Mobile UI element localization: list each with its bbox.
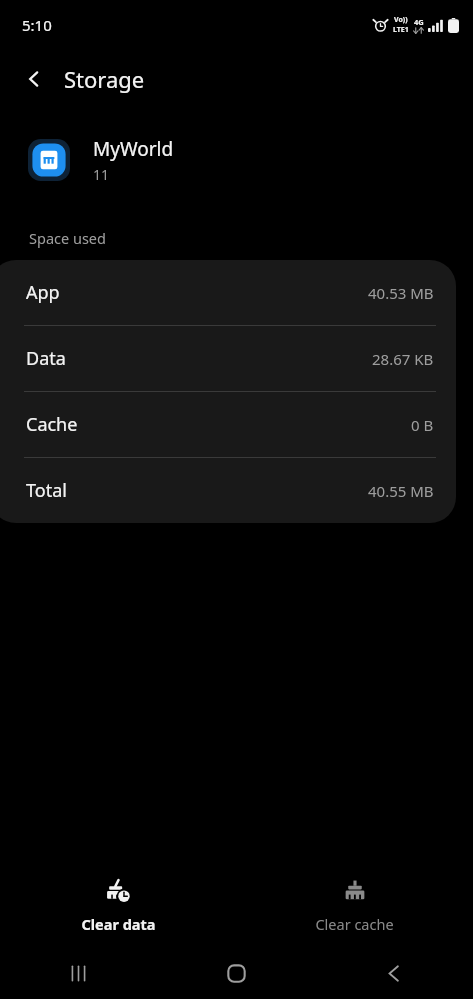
staticText: Space used [29,228,106,248]
button[interactable]: Total [0,458,456,523]
staticText: 11 [93,165,110,184]
staticText: LTE1 [393,25,409,35]
button[interactable]: Clear cache [236,865,473,934]
staticText: Data [26,346,66,371]
staticText: MyWorld [93,136,174,162]
staticText: Vo)) [394,15,408,25]
button[interactable]: App [0,260,456,325]
staticText: Cache [26,412,78,437]
staticText: Clear cache [315,914,394,934]
staticText: 28.67 KB [372,349,434,369]
staticText: 40.55 MB [368,481,434,501]
staticText: App [26,280,60,305]
staticText: 5:10 [22,15,52,35]
button[interactable]: Home [157,947,315,999]
staticText: Clear data [81,914,156,934]
staticText: 0 B [411,415,434,435]
button[interactable]: Back [315,947,473,999]
staticText: Storage [64,64,145,94]
button[interactable]: Cache [0,392,456,457]
button[interactable]: Data [0,326,456,391]
staticText: 4G [414,17,424,27]
button[interactable]: Back [12,57,56,101]
button[interactable]: Clear data [0,865,236,934]
staticText: 40.53 MB [368,283,434,303]
button[interactable]: Recent apps [0,947,157,999]
staticText: Total [26,478,67,503]
